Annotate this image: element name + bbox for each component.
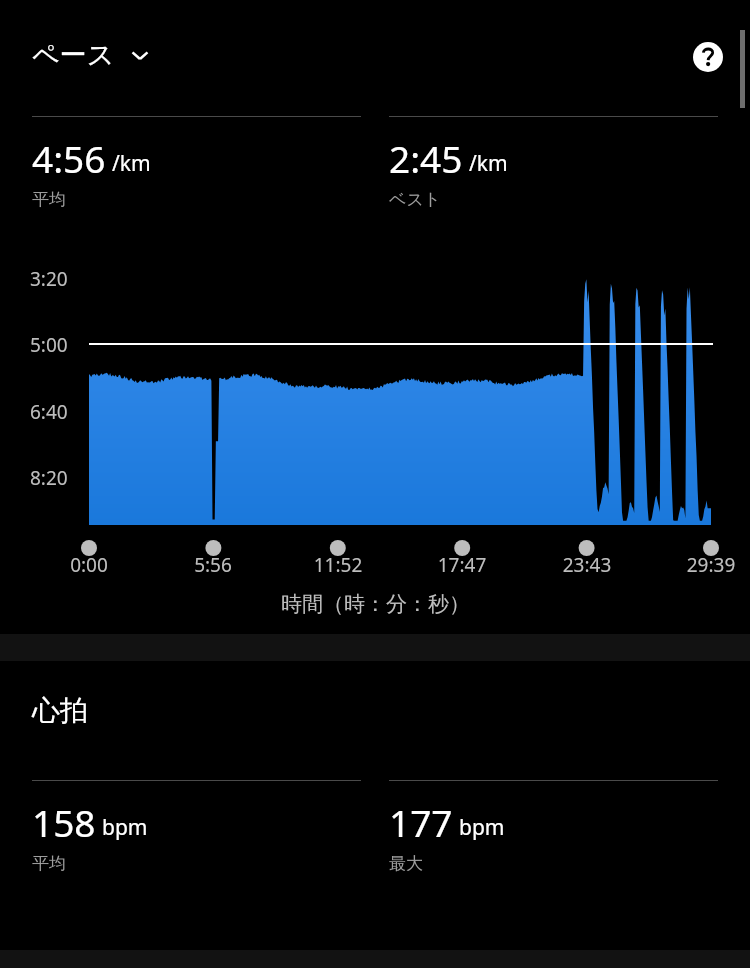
staticText: 5:00: [30, 332, 68, 358]
staticText: bpm: [459, 813, 505, 842]
staticText: 5:56: [169, 552, 257, 578]
staticText: 177: [389, 797, 453, 847]
staticText: /km: [112, 149, 151, 178]
staticText: 3:20: [30, 266, 68, 292]
staticText: 4:56: [32, 133, 106, 183]
staticText: ペース: [32, 38, 115, 72]
staticText: 0:00: [45, 552, 133, 578]
button[interactable]: ヘルプ: [686, 35, 730, 79]
staticText: 平均: [32, 189, 66, 210]
staticText: 平均: [32, 853, 66, 874]
staticText: bpm: [102, 813, 148, 842]
staticText: 2:45: [389, 133, 463, 183]
staticText: 23:43: [543, 552, 631, 578]
staticText: 11:52: [294, 552, 382, 578]
button[interactable]: ペース: [26, 34, 157, 76]
staticText: /km: [469, 149, 508, 178]
staticText: 時間（時：分：秒）: [281, 591, 470, 617]
staticText: 心拍: [32, 693, 88, 728]
staticText: 158: [32, 797, 96, 847]
staticText: ベスト: [389, 189, 442, 210]
staticText: 最大: [389, 853, 423, 874]
staticText: 17:47: [418, 552, 506, 578]
staticText: 29:39: [667, 552, 750, 578]
staticText: 8:20: [30, 465, 68, 491]
staticText: 6:40: [30, 399, 68, 425]
